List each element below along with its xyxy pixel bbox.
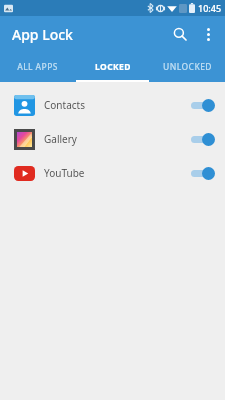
staticText: Gallery [44,132,77,146]
button[interactable]: LOCKED [75,52,150,82]
staticText: ALL APPS [17,61,58,73]
button[interactable]: Toggle lock [190,165,216,181]
staticText: 10:45 [198,2,222,14]
button[interactable]: ALL APPS [0,52,75,82]
button[interactable]: Toggle lock [190,131,216,147]
staticText: App Lock [12,25,73,44]
button[interactable]: Toggle lock [190,97,216,113]
button[interactable]: Search [165,19,195,49]
button[interactable]: More options [195,21,221,47]
staticText: YouTube [44,166,85,180]
staticText: UNLOCKED [163,61,212,73]
staticText: Contacts [44,98,85,112]
button[interactable]: Gallery [0,122,225,156]
button[interactable]: Contacts [0,88,225,122]
button[interactable]: YouTube [0,156,225,190]
button[interactable]: UNLOCKED [150,52,225,82]
staticText: LOCKED [95,61,131,73]
